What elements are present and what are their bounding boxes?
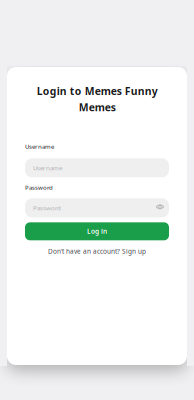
button[interactable]: Don't have an account? Sign up [25, 246, 169, 256]
staticText: Login to Memes Funny Memes [36, 84, 157, 114]
staticText: Password [33, 204, 61, 212]
staticText: Password [25, 183, 53, 191]
staticText: Username [33, 164, 62, 172]
staticText: Log in [87, 227, 107, 236]
staticText: Username [25, 142, 54, 150]
button[interactable]: Log in [25, 222, 169, 240]
staticText: Don't have an account? Sign up [48, 247, 146, 256]
